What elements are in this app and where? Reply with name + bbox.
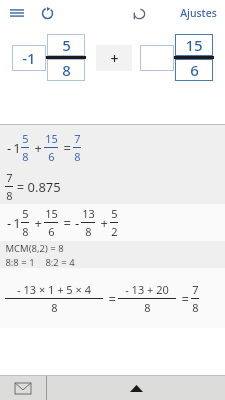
button[interactable]: Ajustes [180, 6, 217, 20]
staticText: 6 [48, 224, 55, 239]
button[interactable]: 5 [47, 34, 85, 56]
staticText: 6 [48, 149, 55, 164]
button[interactable]: Menu [6, 2, 28, 24]
staticText: 15 [185, 35, 203, 55]
staticText: 8 [192, 300, 199, 315]
button[interactable]: Reset [36, 2, 58, 24]
staticText: 5 [111, 206, 118, 221]
staticText: + [95, 214, 110, 232]
button[interactable]: Plus operator [96, 45, 132, 71]
staticText: 8 [62, 60, 71, 80]
staticText: 8 [6, 188, 13, 203]
staticText: - 13 + 20 [125, 282, 169, 297]
staticText: 5 [62, 35, 71, 55]
staticText: = [58, 139, 73, 157]
staticText: 15 [45, 131, 58, 146]
staticText: = [58, 214, 73, 232]
button[interactable]: 8 [47, 59, 85, 81]
staticText: = [176, 290, 191, 308]
staticText: + [29, 139, 44, 157]
staticText: - 13 × 1 + 5 × 4 [17, 282, 91, 297]
staticText: 8 [85, 224, 92, 239]
button[interactable]: Mail [0, 376, 46, 400]
staticText: 8 [74, 149, 81, 164]
staticText: 2 [111, 224, 118, 239]
staticText: = 0.875 [13, 178, 61, 196]
staticText: - [5, 214, 13, 232]
staticText: 5 [22, 206, 29, 221]
staticText: + [29, 214, 44, 232]
button[interactable]: -1 [12, 45, 46, 71]
staticText: - [5, 139, 13, 157]
button[interactable]: Expand [47, 376, 225, 400]
staticText: 7 [192, 282, 199, 297]
staticText: 15 [45, 206, 58, 221]
staticText: 8 [22, 224, 29, 239]
button[interactable]: 6 [175, 59, 213, 81]
staticText: 8 [22, 149, 29, 164]
staticText: = [103, 290, 118, 308]
button[interactable]: Undo [128, 2, 150, 24]
staticText: 7 [6, 170, 13, 185]
staticText: 5 [22, 131, 29, 146]
staticText: - [73, 214, 81, 232]
staticText: 8:2 = 4 [45, 256, 75, 268]
staticText: 8:8 = 1 [5, 256, 35, 268]
staticText: MCM(8,2) = 8 [5, 242, 64, 255]
staticText: 1 [13, 139, 21, 157]
staticText: 8 [144, 300, 151, 315]
staticText: 1 [13, 214, 21, 232]
staticText: 7 [74, 131, 81, 146]
button[interactable] [140, 45, 174, 71]
staticText: + [110, 49, 119, 68]
staticText: 8 [51, 300, 58, 315]
staticText: 13 [82, 206, 95, 221]
staticText: -1 [22, 48, 36, 68]
staticText: Ajustes [180, 6, 217, 20]
staticText: 6 [190, 60, 199, 80]
button[interactable]: 15 [175, 34, 213, 56]
